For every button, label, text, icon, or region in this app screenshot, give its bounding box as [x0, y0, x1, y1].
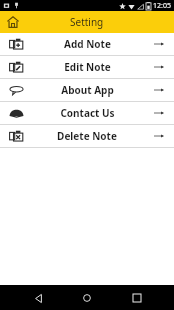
staticText: About App [61, 83, 114, 97]
staticText: 12:05 [153, 1, 171, 11]
button[interactable]: Contact Us [0, 102, 174, 125]
button[interactable]: Delete Note [0, 125, 174, 148]
staticText: Delete Note [57, 129, 117, 143]
button[interactable]: Home [75, 286, 99, 310]
staticText: Setting [70, 15, 104, 29]
staticText: Contact Us [60, 106, 115, 120]
button[interactable]: Back [26, 286, 50, 310]
button[interactable]: Add Note [0, 33, 174, 56]
staticText: Add Note [64, 37, 111, 51]
button[interactable]: Recent apps [125, 286, 149, 310]
staticText: Edit Note [64, 60, 111, 74]
button[interactable]: Home [4, 13, 22, 31]
button[interactable]: Edit Note [0, 56, 174, 79]
button[interactable]: About App [0, 79, 174, 102]
